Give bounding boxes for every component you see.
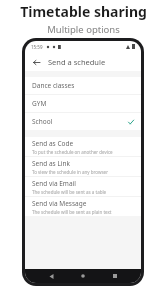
- staticText: Send as Link: [32, 159, 70, 168]
- staticText: The schedule will be sent as a table: [32, 189, 107, 195]
- button[interactable]: Dance classes: [25, 77, 141, 94]
- staticText: GYM: [32, 99, 47, 108]
- button[interactable]: GYM: [25, 95, 141, 112]
- staticText: To put the schedule on another device: [32, 149, 113, 155]
- button[interactable]: School: [25, 113, 141, 130]
- staticText: Dance classes: [32, 81, 75, 90]
- button[interactable]: Recents: [109, 270, 121, 282]
- staticText: The schedule will be sent as plain text: [32, 209, 112, 215]
- button[interactable]: Send as Code: [25, 137, 141, 156]
- staticText: Send a schedule: [48, 57, 106, 67]
- button[interactable]: Back: [45, 270, 57, 282]
- staticText: To view the schedule in any browser: [32, 169, 108, 175]
- button[interactable]: Send via Email: [25, 177, 141, 196]
- button[interactable]: Send as Link: [25, 157, 141, 176]
- button[interactable]: Home: [77, 270, 89, 282]
- staticText: Send via Message: [32, 199, 87, 208]
- button[interactable]: Send via Message: [25, 197, 141, 216]
- staticText: Timetable sharing: [20, 2, 147, 21]
- staticText: Multiple options: [47, 23, 120, 36]
- staticText: School: [32, 117, 53, 126]
- staticText: Send via Email: [32, 179, 76, 188]
- staticText: Send as Code: [32, 139, 74, 148]
- staticText: 15:59: [31, 44, 43, 50]
- button[interactable]: Back: [30, 56, 42, 68]
